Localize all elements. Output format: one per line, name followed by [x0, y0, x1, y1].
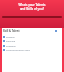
staticText: Communication skills	[6, 48, 30, 51]
button[interactable]: Drawing	[3, 44, 62, 47]
staticText: Skill & Talent	[3, 29, 20, 33]
button[interactable]: Communication skills	[3, 48, 62, 51]
staticText: Singing	[6, 35, 15, 38]
button[interactable]: Dancing	[3, 39, 62, 42]
staticText: Drawing	[6, 44, 16, 47]
staticText: Whats your Talents and Skills of you?	[0, 3, 64, 11]
staticText: Dancing	[6, 39, 16, 42]
button[interactable]: Singing	[3, 35, 62, 38]
